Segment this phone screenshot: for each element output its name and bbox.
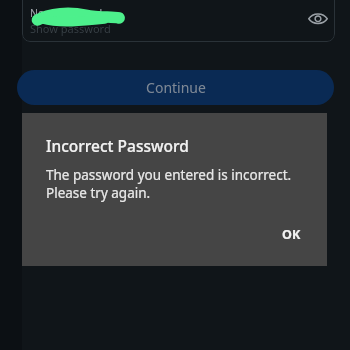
staticText: New password (30, 6, 103, 20)
staticText: The password you entered is incorrect. P… (46, 166, 292, 202)
button[interactable]: Continue (17, 70, 334, 105)
staticText: Incorrect Password (46, 135, 189, 156)
staticText: Continue (146, 78, 206, 97)
button[interactable]: Show password (301, 1, 335, 35)
button[interactable]: New password (22, 0, 335, 42)
staticText: Show password (30, 21, 111, 36)
staticText: OK (282, 226, 301, 243)
button[interactable]: OK (278, 223, 305, 246)
